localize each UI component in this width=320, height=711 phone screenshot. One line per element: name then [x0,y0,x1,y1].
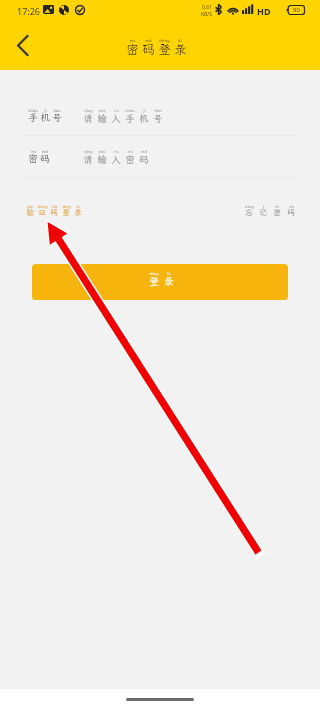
staticText: 入 [111,153,121,165]
staticText: 登 [158,41,171,58]
staticText: qǐng [84,108,93,114]
staticText: 0.61 [202,4,212,11]
staticText: 密 [273,207,281,217]
staticText: 登 [62,207,70,217]
staticText: mǎ [289,204,294,209]
staticText: 码 [287,207,295,217]
staticText: 机 [139,112,149,124]
staticText: 输 [97,153,107,165]
staticText: 证 [38,207,46,217]
staticText: mì [128,149,133,155]
button[interactable]: dēng [32,264,288,300]
staticText: 码 [40,152,50,165]
staticText: 验 [26,207,34,217]
staticText: 请 [83,112,93,124]
staticText: mì [275,204,279,209]
staticText: mǎ [42,149,48,155]
staticText: 输 [97,112,107,124]
staticText: 入 [111,112,121,124]
staticText: dēng [149,271,159,276]
staticText: jī [143,108,146,114]
staticText: 请 [83,153,93,165]
staticText: KB/S [201,11,212,18]
staticText: 90 [293,6,300,14]
staticText: qǐng [84,149,93,155]
staticText: lù [76,204,80,209]
staticText: mǎ [52,204,57,209]
staticText: 码 [50,207,58,217]
staticText: mǎ [141,149,147,155]
staticText: 码 [142,41,155,58]
staticText: hào [154,108,162,114]
staticText: shū [98,149,106,155]
staticText: dēng [159,37,170,43]
staticText: yàn [27,204,33,209]
staticText: mì [130,37,135,43]
staticText: mǎ [145,37,152,43]
staticText: 录 [174,41,187,58]
staticText: 手 [28,111,38,124]
staticText: HD [257,5,271,17]
staticText: jì [262,204,265,209]
staticText: jī [44,108,47,114]
staticText: 忘 [245,207,253,217]
staticText: 号 [52,111,62,124]
staticText: shǒu [125,108,135,114]
staticText: mì [31,149,36,155]
staticText: lù [178,37,182,43]
staticText: wàng [245,204,254,209]
staticText: 机 [40,111,50,124]
staticText: 号 [153,112,163,124]
button[interactable]: wàng [242,207,298,217]
staticText: 录 [164,275,174,288]
staticText: 密 [125,153,135,165]
staticText: lù [167,271,171,276]
staticText: rù [114,149,119,155]
button[interactable]: yàn [24,207,84,217]
staticText: 17:26 [17,5,41,17]
staticText: 码 [139,153,149,165]
staticText: hào [53,108,61,114]
staticText: 记 [259,207,267,217]
staticText: 手 [125,112,135,124]
staticText: shū [98,108,106,114]
staticText: rù [114,108,119,114]
staticText: dēng [62,204,71,209]
staticText: 密 [28,152,38,165]
staticText: shǒu [28,108,38,114]
staticText: 登 [149,275,159,288]
staticText: zhèng [37,204,48,209]
button[interactable]: Back [2,25,42,65]
staticText: 录 [74,207,82,217]
staticText: 密 [126,41,139,58]
